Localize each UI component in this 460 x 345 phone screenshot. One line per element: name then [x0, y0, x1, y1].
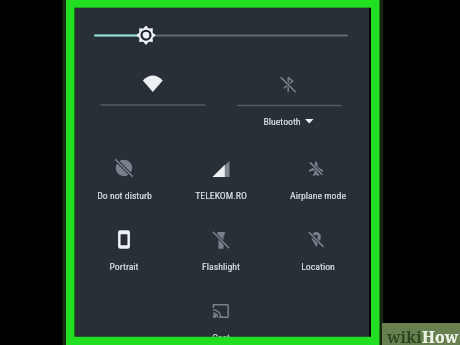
staticText: How — [422, 326, 459, 345]
button[interactable]: Brightness — [95, 22, 347, 48]
button[interactable]: Cast — [176, 280, 272, 342]
staticText: Flashlight — [202, 261, 240, 272]
staticText: Portrait — [109, 261, 139, 272]
staticText: Airplane mode — [290, 190, 346, 201]
button[interactable]: Portrait — [80, 210, 176, 272]
staticText: Cast — [212, 332, 230, 343]
staticText: Location — [301, 261, 335, 272]
button[interactable]: Airplane mode — [272, 140, 368, 202]
button[interactable]: TELEKOM.RO — [176, 140, 272, 202]
button[interactable]: Flashlight — [176, 210, 272, 272]
staticText: Bluetooth — [263, 116, 301, 127]
button[interactable]: Wi-Fi — [95, 58, 220, 110]
button[interactable]: Location — [272, 210, 368, 272]
button[interactable]: Do not disturb — [80, 140, 176, 202]
staticText: Do not disturb — [97, 190, 152, 201]
staticText: TELEKOM.RO — [195, 190, 247, 201]
button[interactable]: Bluetooth — [232, 58, 352, 128]
staticText: wiki — [387, 326, 422, 345]
